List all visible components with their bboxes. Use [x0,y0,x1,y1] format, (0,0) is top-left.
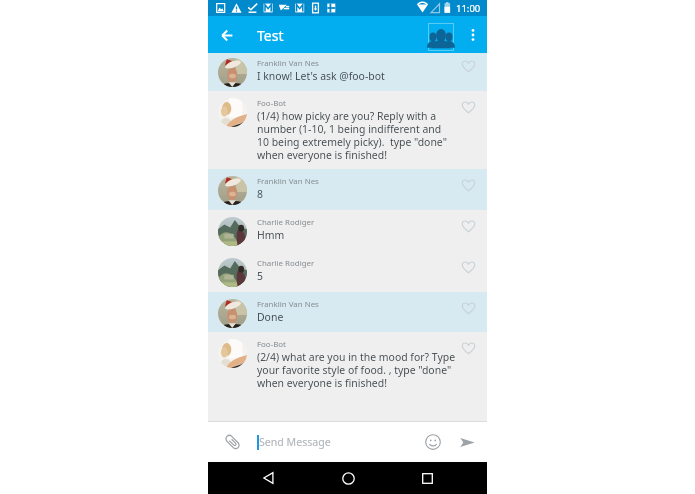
button[interactable]: Send [450,422,484,462]
staticText: 8 [257,187,263,201]
staticText: 5 [257,269,263,283]
button[interactable]: Charlie Rodiger [208,251,487,292]
button[interactable]: More options [460,22,486,48]
button[interactable]: Back [248,462,288,494]
button[interactable]: Like [454,292,487,332]
staticText: 11:00 [456,2,481,15]
button[interactable]: Back [209,17,245,53]
button[interactable]: Like [454,332,487,421]
button[interactable]: Like [454,251,487,292]
button[interactable]: Like [454,169,487,210]
button[interactable]: Foo-Bot [208,91,487,169]
staticText: Foo-Bot [257,98,286,109]
staticText: Test [257,26,284,45]
staticText: Franklin Van Nes [257,299,319,310]
staticText: Done [257,310,284,324]
staticText: Franklin Van Nes [257,58,319,69]
staticText: Send Message [259,435,331,449]
staticText: Charlie Rodiger [257,258,315,269]
staticText: Franklin Van Nes [257,176,319,187]
staticText: (1/4) how picky are you? Reply with a nu… [257,109,447,163]
button[interactable]: Franklin Van Nes [208,292,487,332]
staticText: (2/4) what are you in the mood for? Type… [257,350,456,391]
button[interactable]: Group members [428,23,454,51]
button[interactable]: Recent apps [407,462,447,494]
staticText: Hmm [257,228,285,242]
button[interactable]: Franklin Van Nes [208,169,487,210]
staticText: Charlie Rodiger [257,217,315,228]
staticText: I know! Let's ask @foo-bot [257,69,385,83]
button[interactable]: Like [454,91,487,169]
button[interactable]: Attach file [215,422,249,462]
button[interactable]: Like [454,53,487,91]
button[interactable]: Foo-Bot [208,332,487,421]
button[interactable]: Home [328,462,368,494]
button[interactable]: Like [454,210,487,251]
button[interactable]: Emoji [417,422,449,462]
button[interactable]: Charlie Rodiger [208,210,487,251]
button[interactable]: Franklin Van Nes [208,53,487,91]
staticText: Foo-Bot [257,339,286,350]
